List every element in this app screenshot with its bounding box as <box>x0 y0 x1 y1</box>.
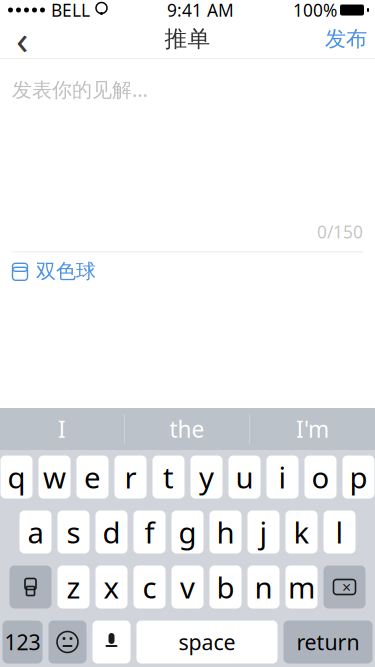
staticText: t <box>163 457 174 496</box>
staticText: 9:41 AM <box>167 0 234 21</box>
button[interactable]: f <box>133 510 165 553</box>
button[interactable]: i <box>266 455 298 498</box>
button[interactable]: Shift <box>9 565 51 608</box>
staticText: 发布 <box>325 26 367 52</box>
button[interactable]: k <box>285 510 317 553</box>
button[interactable]: h <box>209 510 241 553</box>
staticText: e <box>84 457 101 496</box>
staticText: BELL <box>51 0 90 21</box>
staticText: ‹ <box>16 12 28 65</box>
button[interactable]: 双色球 <box>0 252 375 290</box>
button[interactable]: space <box>136 620 277 663</box>
staticText: I <box>58 414 66 444</box>
staticText: × <box>342 576 351 598</box>
button[interactable]: v <box>171 565 203 608</box>
button[interactable]: Delete <box>323 565 365 608</box>
button[interactable]: Dictation <box>92 620 130 663</box>
button[interactable]: y <box>190 455 222 498</box>
staticText: y <box>199 457 214 496</box>
button[interactable]: t <box>152 455 184 498</box>
button[interactable]: Emoji <box>48 620 86 663</box>
button[interactable]: a <box>19 510 51 553</box>
staticText: i <box>278 457 286 496</box>
button[interactable]: g <box>171 510 203 553</box>
staticText: j <box>259 512 267 551</box>
staticText: b <box>216 567 234 606</box>
button[interactable]: z <box>57 565 89 608</box>
staticText: space <box>178 628 235 656</box>
staticText: v <box>180 567 195 606</box>
button[interactable]: Back <box>0 20 44 58</box>
button[interactable]: w <box>38 455 70 498</box>
staticText: g <box>178 512 196 551</box>
staticText: the <box>169 414 204 444</box>
button[interactable]: c <box>133 565 165 608</box>
button[interactable]: l <box>323 510 355 553</box>
button[interactable]: p <box>342 455 374 498</box>
staticText: h <box>216 512 234 551</box>
staticText: a <box>27 512 43 551</box>
staticText: o <box>311 457 329 496</box>
button[interactable]: e <box>76 455 108 498</box>
button[interactable]: 发布 <box>317 20 375 58</box>
staticText: n <box>254 567 272 606</box>
button[interactable]: r <box>114 455 146 498</box>
staticText: u <box>235 457 253 496</box>
button[interactable]: n <box>247 565 279 608</box>
staticText: I'm <box>296 414 329 444</box>
staticText: l <box>335 512 343 551</box>
staticText: 123 <box>4 628 40 656</box>
staticText: z <box>66 567 80 606</box>
button[interactable]: m <box>285 565 317 608</box>
staticText: p <box>349 457 367 496</box>
staticText: 发表你的见解… <box>12 76 148 103</box>
button[interactable]: q <box>0 455 32 498</box>
staticText: 0/150 <box>317 220 363 243</box>
button[interactable]: I'm <box>250 408 375 450</box>
staticText: return <box>296 628 359 656</box>
button[interactable]: u <box>228 455 260 498</box>
button[interactable]: j <box>247 510 279 553</box>
button[interactable]: b <box>209 565 241 608</box>
staticText: s <box>66 512 80 551</box>
staticText: 100% <box>293 0 337 21</box>
staticText: x <box>103 567 119 606</box>
staticText: r <box>124 457 136 496</box>
button[interactable]: 123 <box>2 620 42 663</box>
button[interactable]: s <box>57 510 89 553</box>
staticText: d <box>102 512 120 551</box>
button[interactable]: the <box>125 408 249 450</box>
staticText: c <box>142 567 156 606</box>
button[interactable]: return <box>283 620 372 663</box>
button[interactable]: I <box>0 408 124 450</box>
staticText: m <box>288 567 315 606</box>
staticText: 双色球 <box>36 259 96 284</box>
button[interactable]: o <box>304 455 336 498</box>
staticText: 推单 <box>164 25 210 53</box>
staticText: q <box>7 457 25 496</box>
button[interactable]: d <box>95 510 127 553</box>
staticText: k <box>293 512 309 551</box>
button[interactable]: x <box>95 565 127 608</box>
staticText: w <box>43 457 66 496</box>
staticText: f <box>144 512 154 551</box>
